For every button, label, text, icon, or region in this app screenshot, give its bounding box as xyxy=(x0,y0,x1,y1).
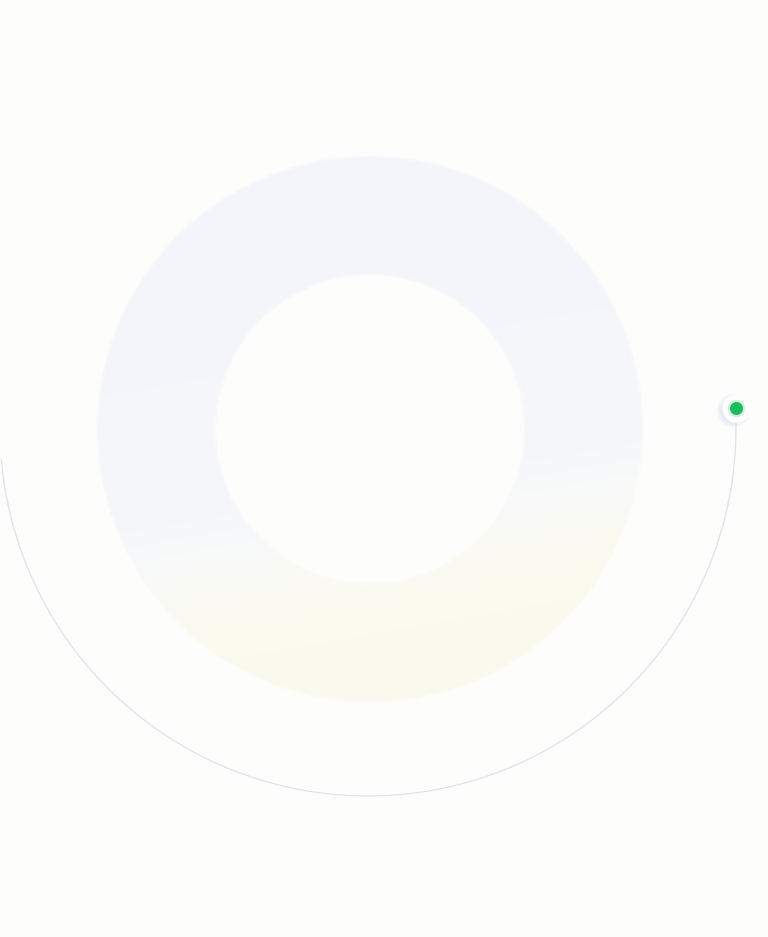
button[interactable]: Progress handle xyxy=(722,394,751,423)
